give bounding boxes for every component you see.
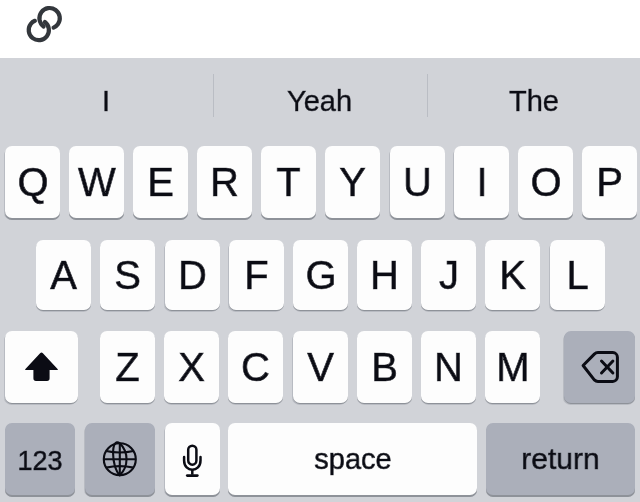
- staticText: T: [276, 160, 301, 205]
- staticText: D: [178, 253, 207, 298]
- button[interactable]: N: [421, 331, 476, 403]
- staticText: G: [305, 253, 337, 298]
- button[interactable]: O: [518, 146, 573, 218]
- staticText: T: [276, 160, 301, 205]
- staticText: X: [178, 345, 205, 390]
- staticText: H: [370, 253, 399, 298]
- button[interactable]: B: [357, 331, 412, 403]
- staticText: 123: [17, 446, 63, 476]
- staticText: W: [78, 160, 116, 205]
- staticText: M: [496, 345, 530, 390]
- button[interactable]: M: [485, 331, 540, 403]
- staticText: L: [566, 253, 589, 298]
- staticText: U: [403, 160, 432, 205]
- staticText: E: [147, 160, 174, 205]
- staticText: I: [102, 85, 111, 117]
- button[interactable]: T: [261, 146, 316, 218]
- button[interactable]: space: [228, 423, 477, 495]
- button[interactable]: Yeah: [213, 58, 426, 130]
- staticText: J: [439, 253, 459, 298]
- staticText: 123: [17, 446, 63, 476]
- staticText: The: [509, 85, 559, 117]
- staticText: C: [241, 345, 270, 390]
- staticText: I: [102, 85, 111, 117]
- button[interactable]: Shift: [5, 331, 78, 403]
- staticText: Z: [115, 345, 140, 390]
- button[interactable]: I: [454, 146, 509, 218]
- button[interactable]: C: [228, 331, 283, 403]
- button[interactable]: V: [293, 331, 348, 403]
- staticText: return: [521, 442, 600, 476]
- staticText: N: [434, 345, 463, 390]
- staticText: M: [496, 345, 530, 390]
- button[interactable]: S: [100, 240, 155, 310]
- staticText: I: [476, 160, 488, 205]
- staticText: W: [78, 160, 116, 205]
- staticText: O: [530, 160, 562, 205]
- button[interactable]: Next keyboard: [85, 423, 155, 495]
- staticText: L: [566, 253, 589, 298]
- staticText: B: [371, 345, 398, 390]
- staticText: Q: [17, 160, 49, 205]
- staticText: space: [314, 443, 392, 475]
- button[interactable]: Q: [5, 146, 60, 218]
- staticText: Z: [115, 345, 140, 390]
- button[interactable]: I: [0, 58, 213, 130]
- staticText: Q: [17, 160, 49, 205]
- button[interactable]: P: [582, 146, 637, 218]
- staticText: The: [509, 85, 559, 117]
- staticText: Yeah: [287, 85, 353, 117]
- staticText: B: [371, 345, 398, 390]
- button[interactable]: Link: [18, 2, 70, 54]
- staticText: H: [370, 253, 399, 298]
- staticText: E: [147, 160, 174, 205]
- staticText: P: [596, 160, 623, 205]
- staticText: J: [439, 253, 459, 298]
- staticText: space: [314, 443, 392, 475]
- button[interactable]: W: [69, 146, 124, 218]
- staticText: return: [521, 442, 600, 476]
- staticText: V: [307, 345, 334, 390]
- button[interactable]: D: [165, 240, 220, 310]
- staticText: Y: [339, 160, 366, 205]
- staticText: Yeah: [287, 85, 353, 117]
- button[interactable]: E: [133, 146, 188, 218]
- staticText: K: [499, 253, 526, 298]
- button[interactable]: F: [229, 240, 284, 310]
- button[interactable]: X: [164, 331, 219, 403]
- staticText: G: [305, 253, 337, 298]
- button[interactable]: U: [390, 146, 445, 218]
- staticText: Y: [339, 160, 366, 205]
- button[interactable]: L: [550, 240, 605, 310]
- staticText: A: [50, 253, 77, 298]
- staticText: N: [434, 345, 463, 390]
- staticText: D: [178, 253, 207, 298]
- staticText: U: [403, 160, 432, 205]
- staticText: A: [50, 253, 77, 298]
- staticText: F: [244, 253, 269, 298]
- staticText: R: [210, 160, 239, 205]
- staticText: V: [307, 345, 334, 390]
- button[interactable]: Z: [100, 331, 155, 403]
- button[interactable]: return: [486, 423, 635, 495]
- staticText: X: [178, 345, 205, 390]
- button[interactable]: G: [293, 240, 348, 310]
- staticText: C: [241, 345, 270, 390]
- button[interactable]: The: [427, 58, 640, 130]
- button[interactable]: Backspace: [564, 331, 635, 403]
- button[interactable]: K: [485, 240, 540, 310]
- button[interactable]: H: [357, 240, 412, 310]
- staticText: K: [499, 253, 526, 298]
- staticText: S: [114, 253, 141, 298]
- staticText: P: [596, 160, 623, 205]
- button[interactable]: Voice input: [165, 423, 220, 495]
- button[interactable]: Y: [325, 146, 380, 218]
- staticText: F: [244, 253, 269, 298]
- button[interactable]: J: [421, 240, 476, 310]
- staticText: I: [476, 160, 488, 205]
- staticText: R: [210, 160, 239, 205]
- button[interactable]: R: [197, 146, 252, 218]
- button[interactable]: A: [36, 240, 91, 310]
- button[interactable]: 123: [5, 423, 75, 495]
- staticText: O: [530, 160, 562, 205]
